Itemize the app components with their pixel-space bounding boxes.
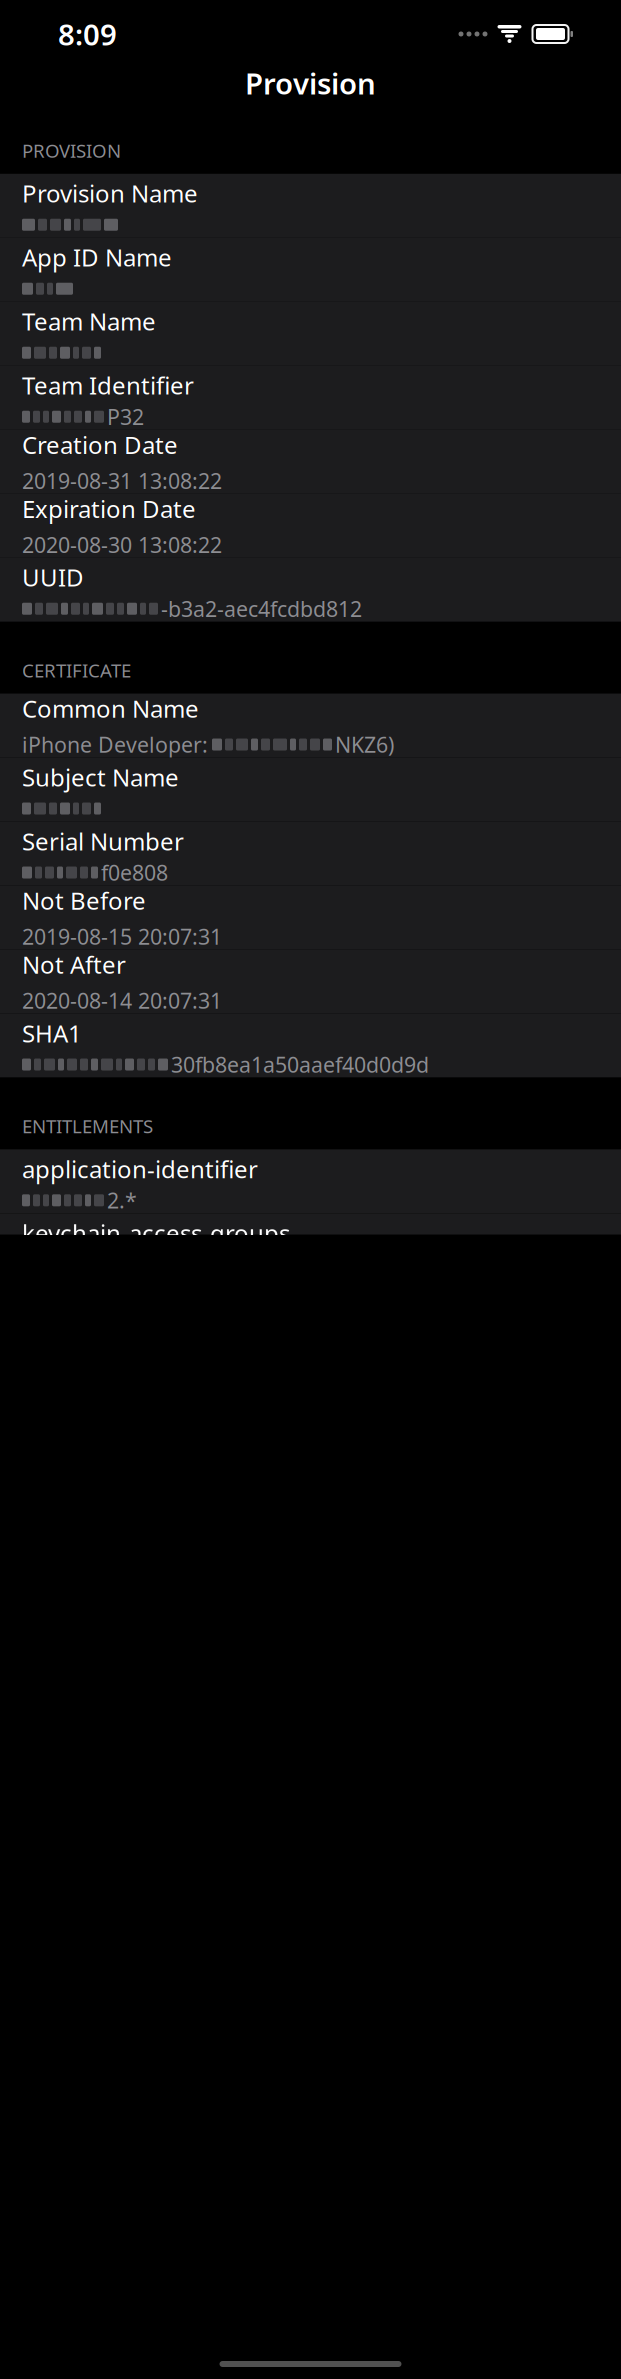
staticText: -b3a2-aec4fcdbd812: [161, 595, 362, 623]
button[interactable]: UUID: [0, 558, 621, 622]
staticText: CERTIFICATE: [22, 658, 131, 683]
staticText: Subject Name: [22, 761, 179, 793]
button[interactable]: Provision Name: [0, 174, 621, 238]
staticText: iPhone Developer:: [22, 730, 208, 759]
staticText: Provision: [245, 63, 376, 102]
staticText: Serial Number: [22, 825, 184, 857]
button[interactable]: Subject Name: [0, 758, 621, 822]
button[interactable]: SHA1: [0, 1014, 621, 1078]
staticText: Not After: [22, 948, 126, 980]
button[interactable]: Team Identifier: [0, 366, 621, 430]
staticText: 2020-08-30 13:08:22: [22, 531, 222, 559]
staticText: P32: [107, 403, 144, 431]
staticText: App ID Name: [22, 241, 172, 273]
staticText: 30fb8ea1a50aaef40d0d9d: [171, 1050, 429, 1079]
button[interactable]: Expiration Date: [0, 494, 621, 558]
staticText: Team Name: [22, 305, 156, 337]
staticText: NKZ6): [335, 730, 394, 759]
staticText: Expiration Date: [22, 493, 196, 525]
button[interactable]: Not Before: [0, 886, 621, 950]
staticText: 8:09: [58, 14, 117, 53]
staticText: 2.*: [107, 1186, 137, 1214]
button[interactable]: keychain-access-groups: [0, 1213, 621, 1277]
staticText: SHA1: [22, 1017, 82, 1049]
staticText: 2020-08-14 20:07:31: [22, 986, 222, 1015]
staticText: PROVISION: [22, 138, 121, 163]
staticText: application-identifier: [22, 1153, 258, 1185]
staticText: Provision Name: [22, 177, 198, 209]
staticText: 2019-08-31 13:08:22: [22, 467, 222, 495]
button[interactable]: App ID Name: [0, 238, 621, 302]
staticText: Common Name: [22, 692, 199, 724]
staticText: UUID: [22, 561, 84, 593]
button[interactable]: Not After: [0, 950, 621, 1014]
staticText: Not Before: [22, 884, 146, 916]
staticText: f0e808: [101, 858, 168, 887]
staticText: Team Identifier: [22, 369, 194, 401]
button[interactable]: Serial Number: [0, 822, 621, 886]
button[interactable]: Common Name: [0, 694, 621, 758]
staticText: ENTITLEMENTS: [22, 1114, 153, 1138]
staticText: keychain-access-groups: [22, 1217, 290, 1249]
staticText: 2019-08-15 20:07:31: [22, 922, 222, 951]
button[interactable]: Creation Date: [0, 430, 621, 494]
button[interactable]: application-identifier: [0, 1149, 621, 1213]
staticText: Creation Date: [22, 429, 178, 461]
button[interactable]: Team Name: [0, 302, 621, 366]
